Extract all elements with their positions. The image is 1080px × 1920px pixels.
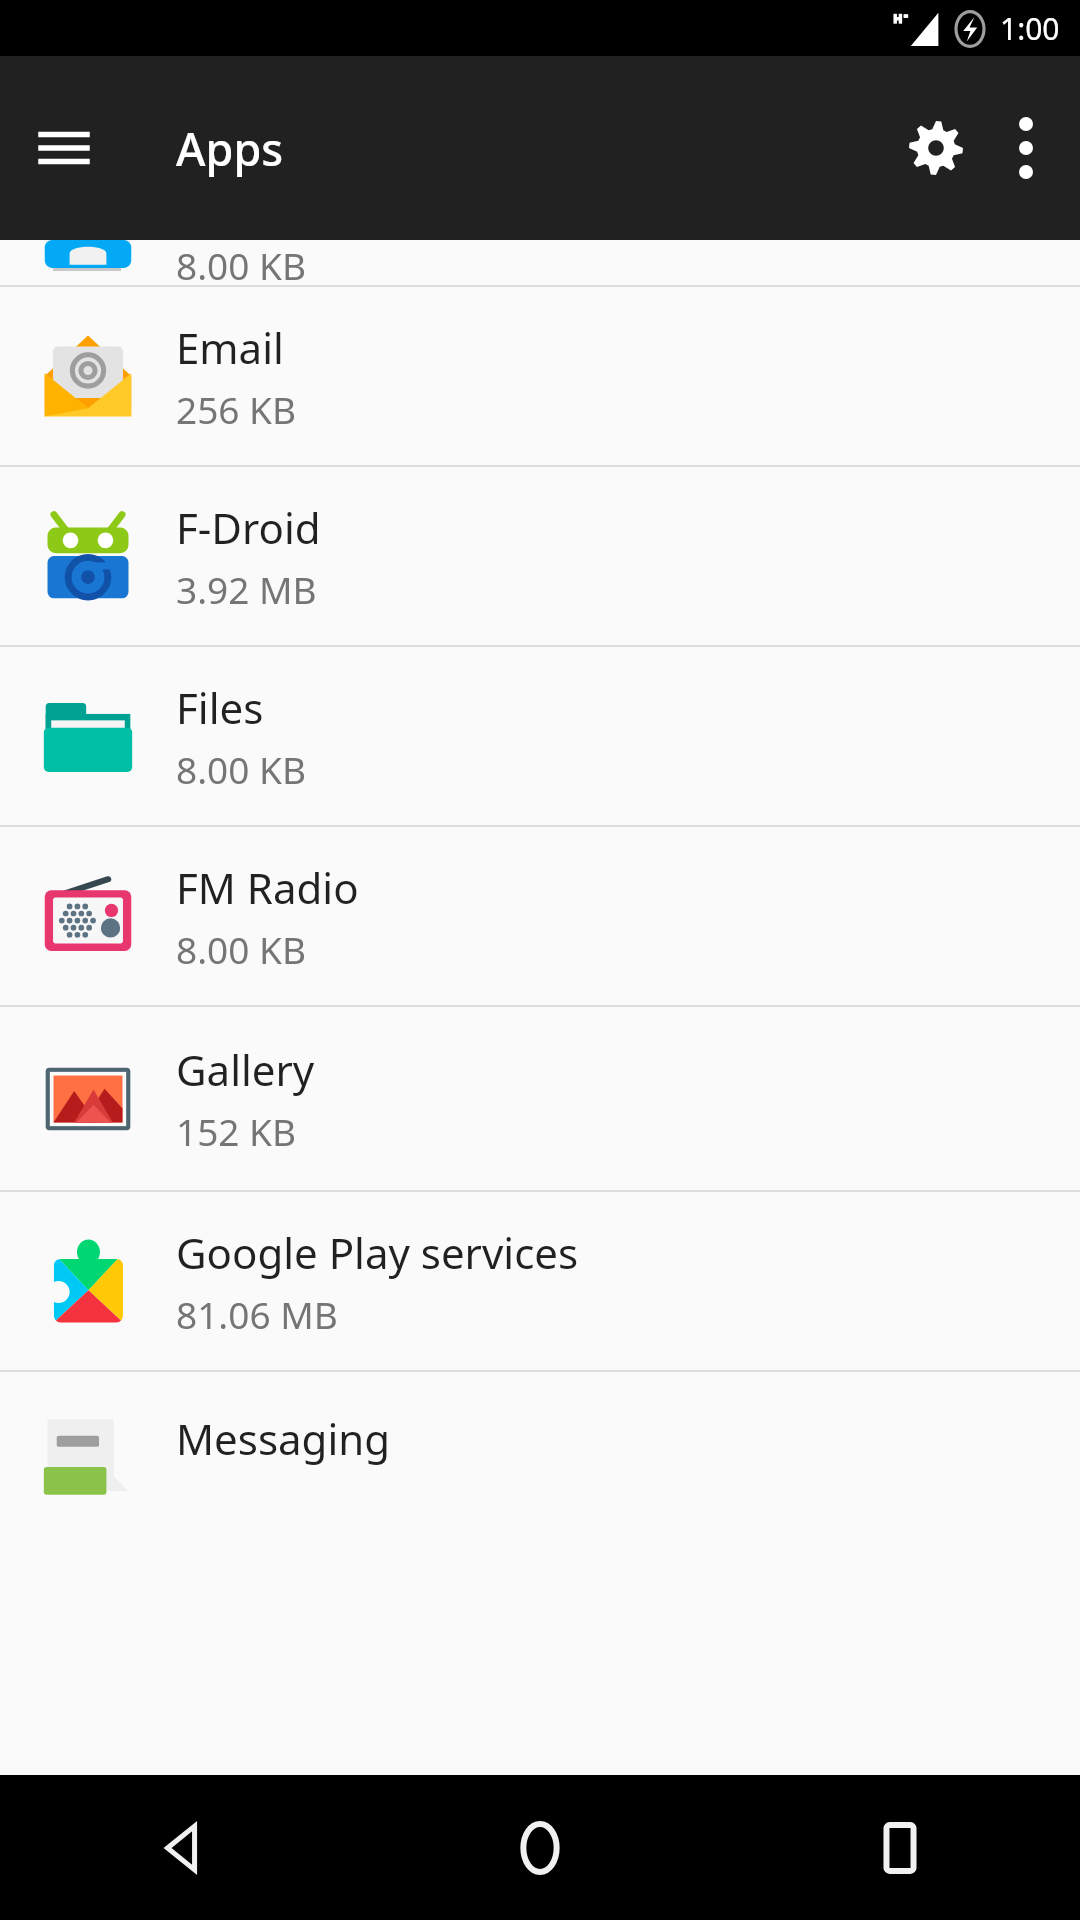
button[interactable]: Home (360, 1775, 720, 1920)
button[interactable]: Messaging (0, 1372, 1080, 1775)
button[interactable]: Open navigation drawer (26, 110, 102, 186)
staticText: Files (176, 679, 264, 736)
button[interactable]: F-Droid (0, 467, 1080, 645)
staticText: 152 KB (176, 1106, 297, 1156)
button[interactable]: Files (0, 647, 1080, 825)
staticText: Apps (176, 118, 284, 179)
button[interactable]: Settings (888, 100, 984, 196)
button[interactable]: Email (0, 287, 1080, 465)
staticText: Gallery (176, 1041, 315, 1098)
button[interactable]: Recent apps (720, 1775, 1080, 1920)
staticText: 256 KB (176, 384, 297, 434)
staticText: 1:00 (1000, 8, 1060, 49)
staticText: Google Play services (176, 1224, 579, 1281)
staticText: F-Droid (176, 499, 321, 556)
button[interactable]: Google Play services (0, 1192, 1080, 1370)
staticText: 8.00 KB (176, 240, 306, 285)
staticText: 8.00 KB (176, 924, 306, 974)
staticText: Messaging (176, 1410, 391, 1467)
button[interactable]: 8.00 KB (0, 240, 1080, 285)
staticText: 81.06 MB (176, 1289, 338, 1339)
staticText: 3.92 MB (176, 564, 317, 614)
button[interactable]: More options (984, 106, 1068, 190)
button[interactable]: FM Radio (0, 827, 1080, 1005)
staticText: FM Radio (176, 859, 359, 916)
staticText: Email (176, 319, 284, 376)
staticText: 8.00 KB (176, 744, 306, 794)
button[interactable]: Gallery (0, 1007, 1080, 1190)
button[interactable]: Back (0, 1775, 360, 1920)
